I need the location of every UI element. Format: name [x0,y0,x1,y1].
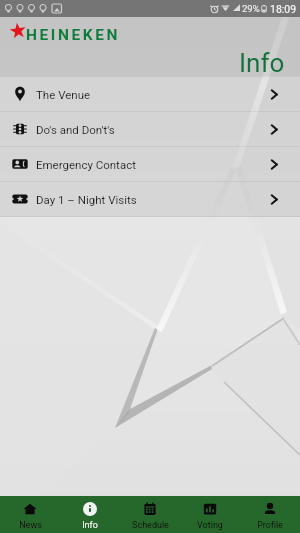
button[interactable]: Voting [180,496,240,533]
button[interactable]: News [0,496,60,533]
staticText: The Venue [36,88,91,101]
staticText: Info [239,48,285,76]
other: Profile [263,502,277,516]
button[interactable]: Day 1 – Night Visits [0,182,300,217]
staticText: Do's and Don't's [36,123,115,136]
button[interactable]: Do's and Don't's [0,112,300,147]
staticText: 29% [242,3,260,14]
button[interactable]: Schedule [120,496,180,533]
staticText: News [19,520,42,531]
button[interactable]: Info [60,496,120,533]
button[interactable]: Profile [240,496,300,533]
staticText: Schedule [132,520,169,531]
staticText: Emergency Contact [36,158,136,171]
other: News [23,502,37,516]
staticText: Info [82,520,98,531]
staticText: 18:09 [270,3,297,15]
other: Schedule [143,502,157,516]
staticText: HEINEKEN [26,26,121,44]
staticText: Day 1 – Night Visits [36,193,137,206]
staticText: Voting [197,520,223,531]
other: Voting [203,502,217,516]
button[interactable]: The Venue [0,77,300,112]
button[interactable]: Emergency Contact [0,147,300,182]
staticText: Profile [257,520,283,531]
